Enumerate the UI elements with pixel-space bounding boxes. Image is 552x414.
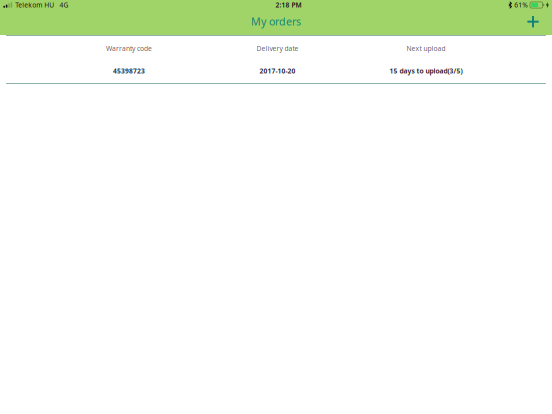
staticText: Warranty code bbox=[106, 44, 152, 53]
staticText: 15 days to upload(3/5) bbox=[389, 66, 462, 75]
staticText: Next upload bbox=[406, 44, 445, 53]
staticText: Telekom HU bbox=[15, 1, 54, 9]
staticText: 2017-10-20 bbox=[259, 66, 295, 75]
button[interactable]: 45398723 bbox=[0, 57, 552, 83]
button[interactable]: Add order bbox=[521, 11, 545, 33]
staticText: 61% bbox=[514, 1, 528, 9]
staticText: 2:18 PM bbox=[276, 1, 302, 9]
staticText: 4G bbox=[60, 1, 69, 9]
staticText: Delivery date bbox=[256, 44, 298, 53]
staticText: 45398723 bbox=[113, 66, 145, 75]
staticText: My orders bbox=[251, 14, 301, 28]
